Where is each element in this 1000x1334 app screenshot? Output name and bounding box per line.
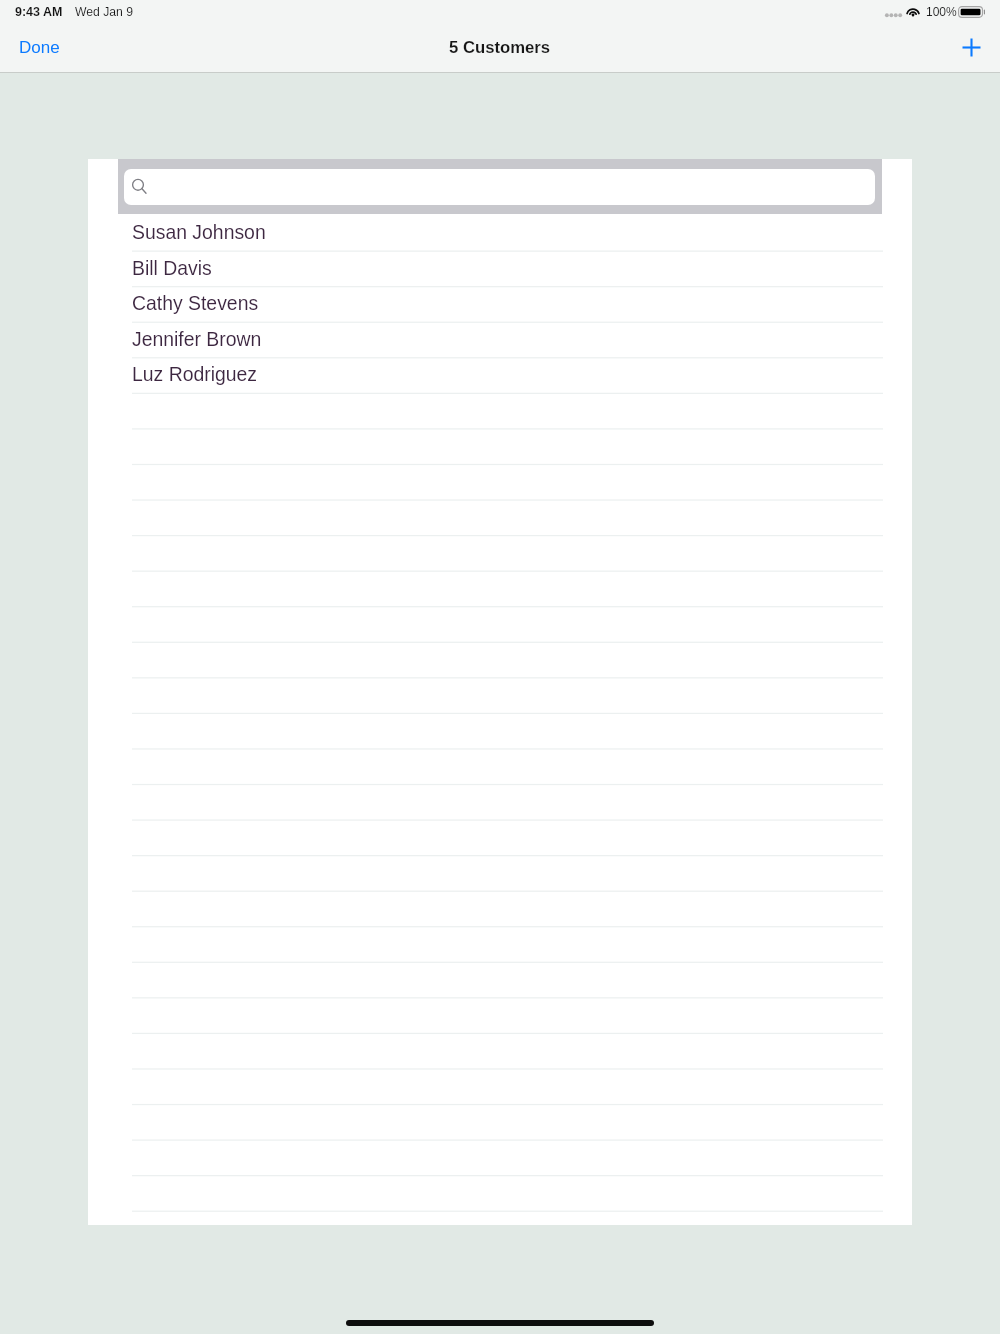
staticText: 5 Customers [449,38,551,57]
button[interactable]: Cathy Stevens [88,285,912,321]
staticText: Jennifer Brown [132,328,262,350]
staticText: Done [19,38,60,57]
staticText: Bill Davis [132,257,212,279]
button[interactable]: Bill Davis [88,250,912,286]
staticText: Wed Jan 9 [75,5,134,19]
staticText: 9:43 AM [15,5,63,19]
button[interactable]: Done [7,32,72,63]
button[interactable]: Jennifer Brown [88,321,912,357]
staticText: 100% [926,5,957,18]
button[interactable]: Susan Johnson [88,214,912,250]
staticText: Susan Johnson [132,221,266,243]
button[interactable]: Luz Rodriguez [88,356,912,392]
staticText: Cathy Stevens [132,292,259,314]
button[interactable]: Search [124,169,875,205]
button[interactable]: Add customer [952,28,991,67]
staticText: Luz Rodriguez [132,363,258,385]
